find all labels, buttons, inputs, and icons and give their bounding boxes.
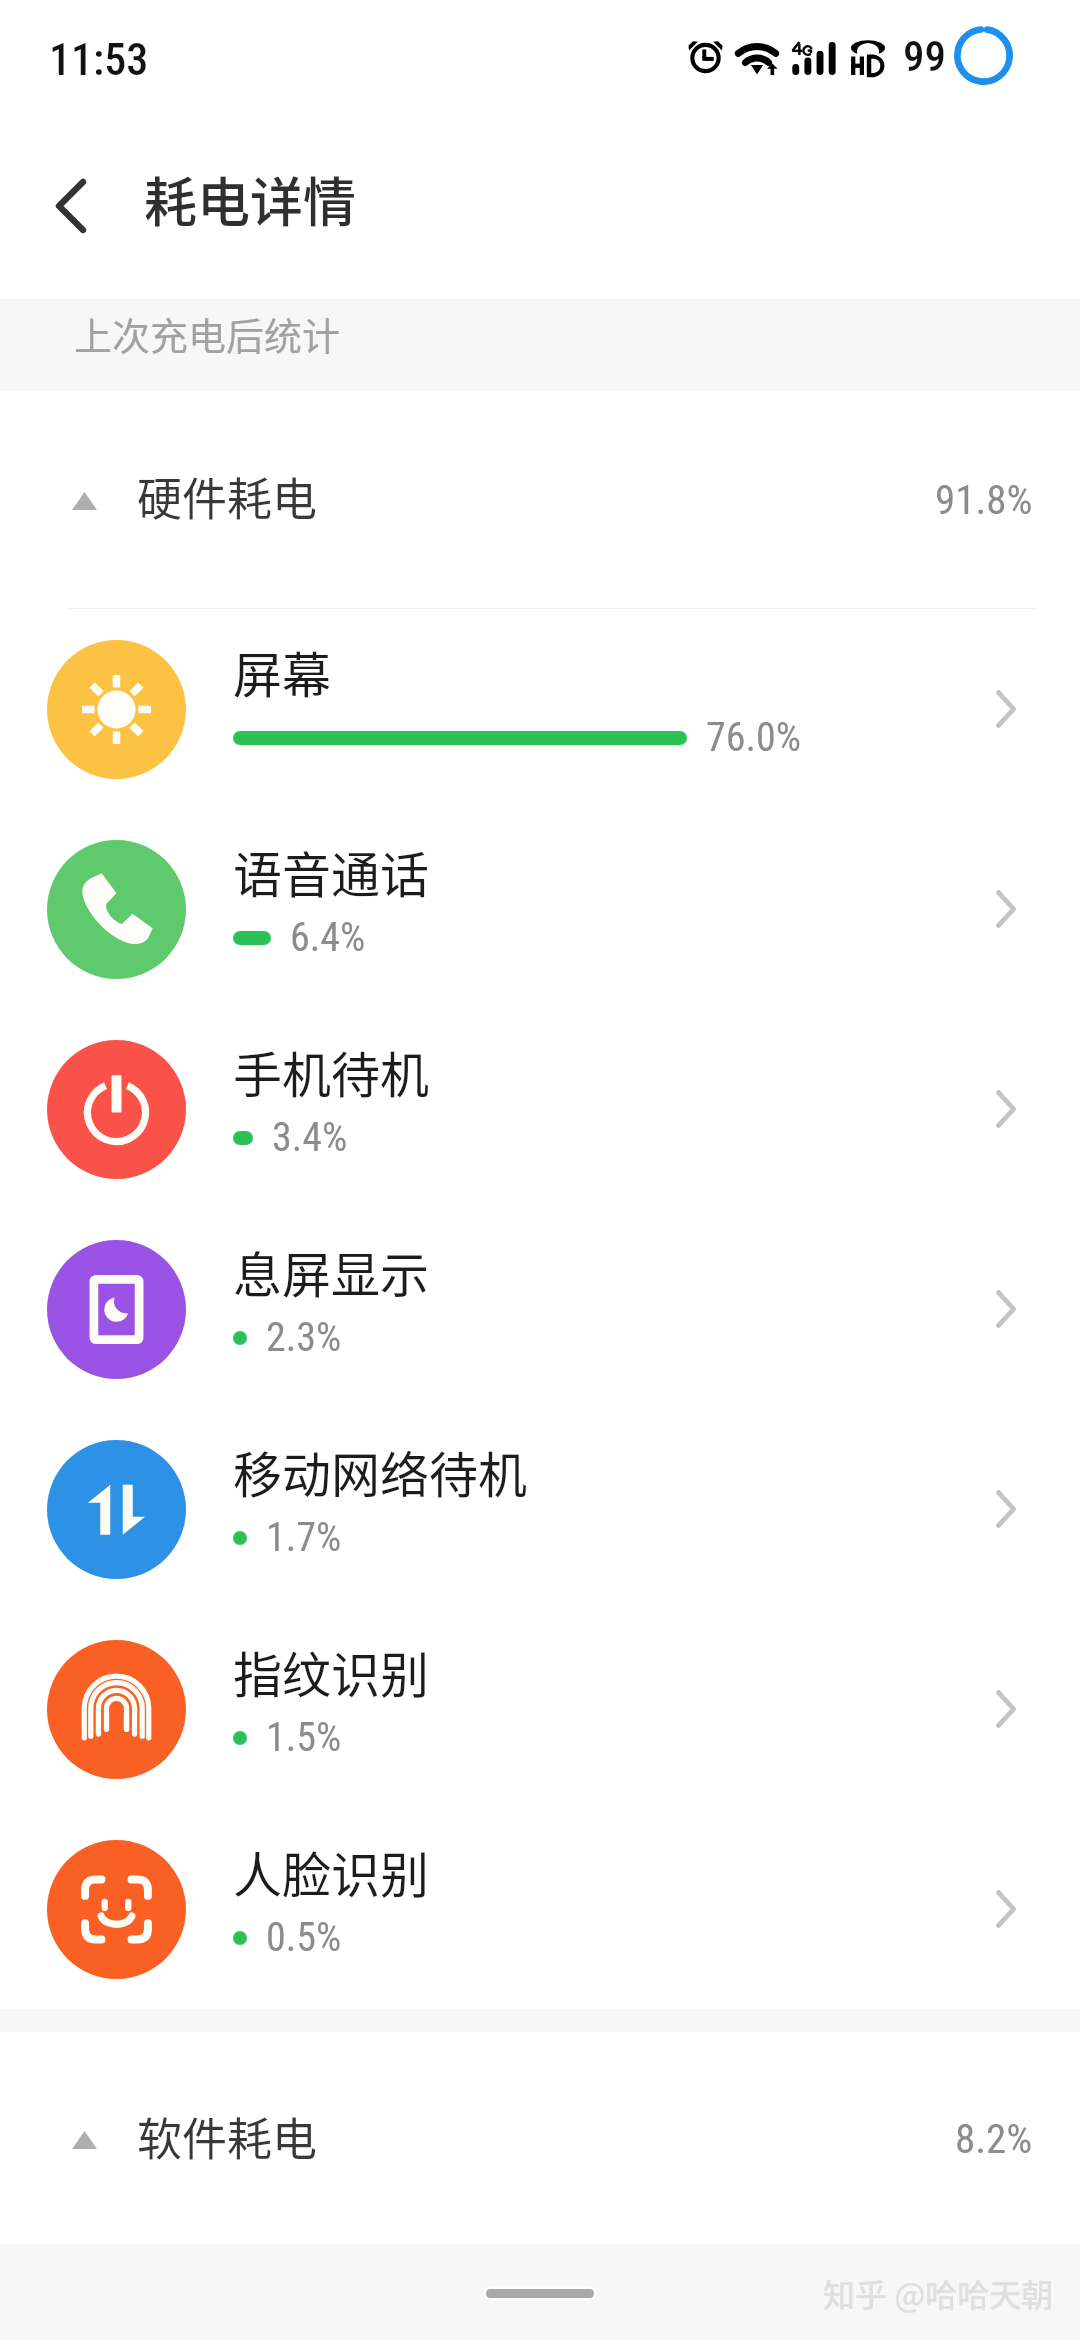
staticText: 手机待机 (233, 1036, 430, 1107)
button[interactable]: 软件耗电 (0, 2032, 1080, 2244)
button[interactable]: 移动网络待机 (0, 1409, 1080, 1609)
staticText: 99 (903, 31, 946, 81)
staticText: 1.5% (266, 1714, 342, 1761)
staticText: 人脸识别 (233, 1836, 430, 1907)
button[interactable]: 息屏显示 (0, 1209, 1080, 1409)
staticText: 移动网络待机 (233, 1436, 528, 1507)
button[interactable]: 语音通话 (0, 809, 1080, 1009)
staticText: 1.7% (266, 1514, 342, 1561)
staticText: 8.2% (955, 2115, 1033, 2163)
staticText: 0.5% (266, 1914, 342, 1961)
staticText: 指纹识别 (233, 1636, 430, 1707)
staticText: 上次充电后统计 (74, 306, 341, 361)
staticText: 屏幕 (233, 636, 332, 707)
staticText: 软件耗电 (137, 2104, 318, 2169)
button[interactable]: 手机待机 (0, 1009, 1080, 1209)
staticText: 知乎 @哈哈天朝 (823, 2270, 1054, 2316)
button[interactable]: Back (26, 161, 116, 251)
staticText: 硬件耗电 (137, 464, 318, 529)
staticText: 2.3% (266, 1314, 342, 1361)
staticText: 11:53 (49, 34, 149, 86)
staticText: 91.8% (935, 476, 1033, 524)
staticText: 6.4% (290, 914, 366, 961)
button[interactable]: 屏幕 (0, 609, 1080, 809)
button[interactable]: 硬件耗电 (0, 391, 1080, 608)
staticText: 息屏显示 (233, 1236, 430, 1307)
staticText: 耗电详情 (144, 161, 356, 238)
staticText: 76.0% (706, 714, 802, 761)
button[interactable]: 指纹识别 (0, 1609, 1080, 1809)
button[interactable]: 人脸识别 (0, 1809, 1080, 2009)
staticText: 3.4% (272, 1114, 348, 1161)
staticText: 语音通话 (233, 836, 430, 907)
